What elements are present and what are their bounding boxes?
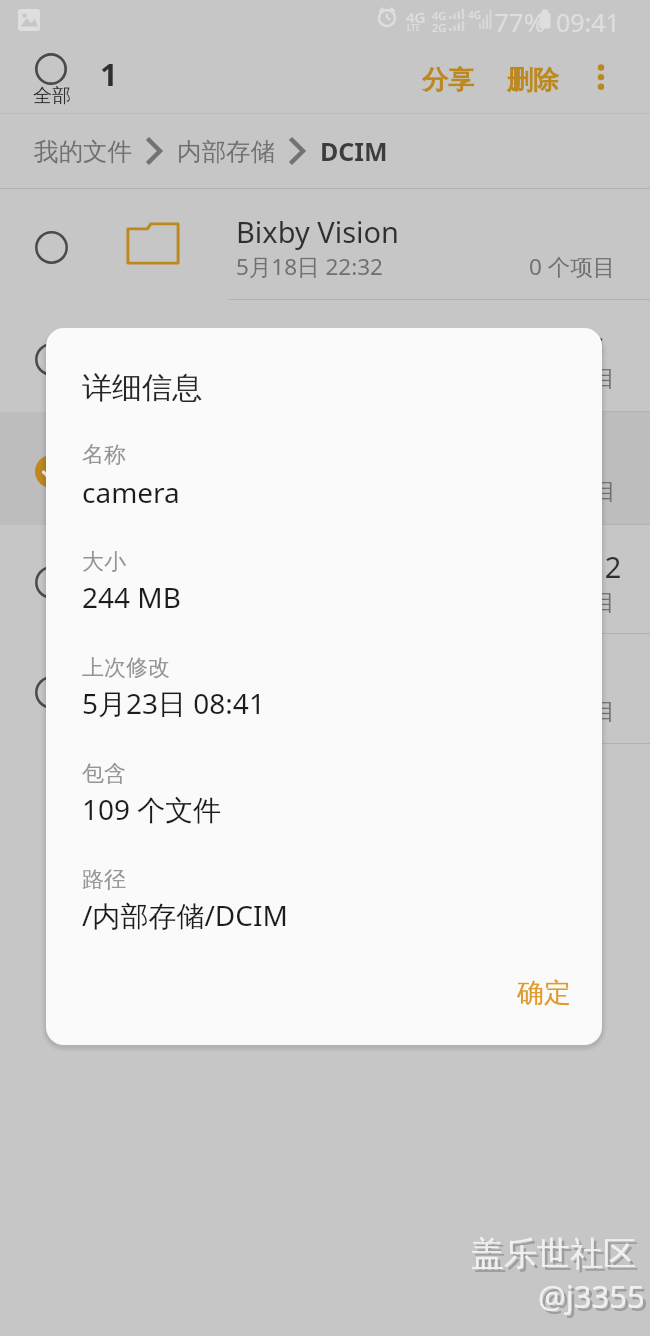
staticText: 4G (406, 7, 426, 27)
staticText: Video (236, 656, 313, 695)
staticText: 路径 (82, 866, 126, 894)
staticText: 09:41 (556, 5, 620, 39)
staticText: 大小 (82, 548, 126, 576)
staticText: Screenshots backup folder 2 (236, 547, 622, 586)
staticText: 5月20日 10:00 (236, 695, 383, 726)
staticText: Bixby Vision (236, 212, 399, 251)
button[interactable]: Screenshots backup folder 2 (0, 525, 650, 634)
staticText: 3 个项目 (529, 695, 616, 726)
button[interactable]: 删除 (493, 54, 573, 107)
staticText: 4G (432, 8, 447, 23)
staticText: /内部存储/DCIM (82, 896, 288, 934)
staticText: LTE (407, 22, 420, 33)
staticText: 5月23日 08:41 (82, 684, 265, 722)
button[interactable]: 我的文件 (34, 136, 132, 167)
staticText: Camera Screenshots Collec (236, 323, 604, 362)
button[interactable]: DCIM (320, 134, 388, 168)
staticText: @j3355 (541, 1278, 648, 1320)
button[interactable]: 全部 (24, 46, 80, 112)
staticText: 上次修改 (82, 654, 170, 682)
staticText: 5月18日 22:32 (236, 251, 383, 282)
staticText: 109 个文件 (82, 790, 222, 828)
staticText: 109 个项目 (504, 475, 616, 506)
staticText: 名称 (82, 441, 126, 469)
staticText: 244 MB (82, 578, 181, 616)
button[interactable]: 确定 (501, 964, 587, 1022)
staticText: 分享 (422, 64, 474, 97)
button[interactable]: 分享 (408, 54, 488, 107)
button[interactable]: Bixby Vision (0, 189, 650, 300)
staticText: 77% (494, 4, 546, 39)
staticText: 0 个项目 (529, 251, 616, 282)
button[interactable]: camera (0, 412, 650, 525)
staticText: 全部 (33, 84, 71, 108)
staticText: 24 个项目 (516, 586, 616, 617)
staticText: 1 (100, 53, 118, 95)
staticText: 包含 (82, 760, 126, 788)
staticText: 盖乐世社区 (474, 1236, 639, 1278)
button[interactable]: Camera Screenshots Collec (0, 300, 650, 412)
staticText: 4G (468, 8, 481, 22)
staticText: 确定 (517, 976, 571, 1010)
staticText: 2G (432, 20, 447, 35)
staticText: 8 个项目 (529, 362, 616, 393)
button[interactable]: More options (578, 54, 624, 100)
staticText: camera (82, 473, 180, 511)
button[interactable]: 内部存储 (177, 136, 275, 167)
staticText: 盖乐世社区 (471, 1233, 636, 1275)
button[interactable]: Video (0, 634, 650, 744)
staticText: 详细信息 (82, 369, 202, 407)
staticText: 删除 (507, 64, 559, 97)
staticText: @j3355 (538, 1275, 645, 1317)
